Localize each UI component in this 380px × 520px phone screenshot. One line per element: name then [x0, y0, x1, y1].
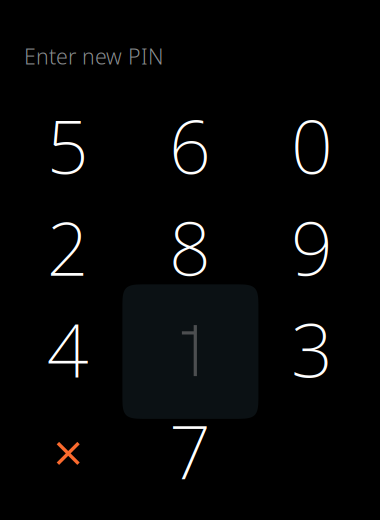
button[interactable]: 8 [122, 182, 258, 316]
staticText: 8 [169, 199, 211, 296]
staticText: 9 [291, 199, 333, 296]
button[interactable]: 0 [244, 80, 380, 214]
staticText: 0 [291, 97, 333, 194]
button[interactable]: Delete [0, 385, 136, 520]
button[interactable]: 2 [0, 182, 136, 316]
staticText: 5 [47, 97, 89, 194]
button[interactable]: 7 [122, 385, 258, 520]
staticText: 6 [169, 97, 211, 194]
staticText: 4 [47, 300, 89, 398]
button[interactable]: 4 [0, 283, 136, 418]
button[interactable]: 6 [122, 80, 258, 214]
staticText: 7 [169, 402, 211, 500]
staticText: 3 [291, 300, 333, 398]
staticText: 2 [47, 199, 89, 296]
button[interactable]: 9 [244, 182, 380, 316]
staticText: Enter new PIN [24, 42, 164, 70]
button[interactable] [122, 283, 258, 418]
button[interactable]: 3 [244, 283, 380, 418]
button[interactable]: 5 [0, 80, 136, 214]
